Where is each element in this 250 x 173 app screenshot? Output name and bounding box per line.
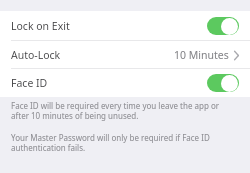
staticText: Face ID will be required every time you … xyxy=(11,100,239,121)
button[interactable]: Face ID xyxy=(0,69,250,97)
staticText: 10 Minutes xyxy=(174,48,229,62)
staticText: Auto-Lock xyxy=(11,48,61,62)
button[interactable]: Toggle xyxy=(207,17,239,35)
staticText: Lock on Exit xyxy=(11,19,70,33)
button[interactable]: Toggle xyxy=(207,74,239,92)
staticText: Face ID xyxy=(11,76,48,90)
button[interactable]: Auto-Lock xyxy=(0,41,250,69)
button[interactable]: Lock on Exit xyxy=(0,11,250,41)
staticText: Your Master Password will only be requir… xyxy=(11,132,239,153)
